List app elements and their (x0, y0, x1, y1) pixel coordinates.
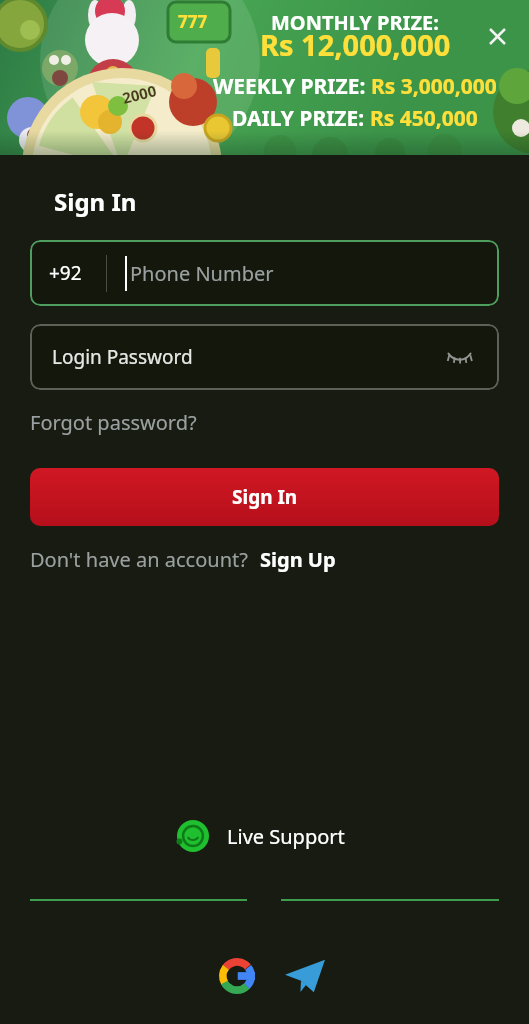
button[interactable]: 777 (0, 0, 529, 155)
staticText: +92 (49, 260, 82, 286)
staticText: WEEKLY PRIZE: (213, 72, 371, 101)
staticText: Don't have an account? (30, 546, 248, 573)
button[interactable]: Forgot password? (30, 409, 197, 436)
staticText: Rs 12,000,000 (260, 25, 451, 64)
staticText: Rs 450,000 (370, 104, 478, 133)
button[interactable]: +92 (30, 240, 499, 306)
button[interactable] (219, 958, 255, 994)
button[interactable]: Login Password (30, 324, 499, 390)
button[interactable]: Sign In (30, 468, 499, 526)
button[interactable] (490, 29, 505, 44)
staticText: 2000 (120, 80, 159, 108)
button[interactable]: Sign Up (260, 546, 336, 573)
button[interactable]: Live Support (177, 820, 345, 852)
button[interactable] (285, 959, 325, 993)
staticText: Login Password (52, 344, 193, 370)
staticText: Sign In (232, 484, 298, 510)
staticText: Live Support (227, 823, 345, 850)
staticText: Phone Number (130, 260, 274, 287)
staticText: DAILY PRIZE: (232, 104, 370, 133)
staticText: Rs 3,000,000 (371, 72, 497, 101)
staticText: 777 (178, 10, 208, 33)
staticText: MONTHLY PRIZE: (271, 9, 439, 36)
staticText: Sign In (54, 185, 137, 218)
